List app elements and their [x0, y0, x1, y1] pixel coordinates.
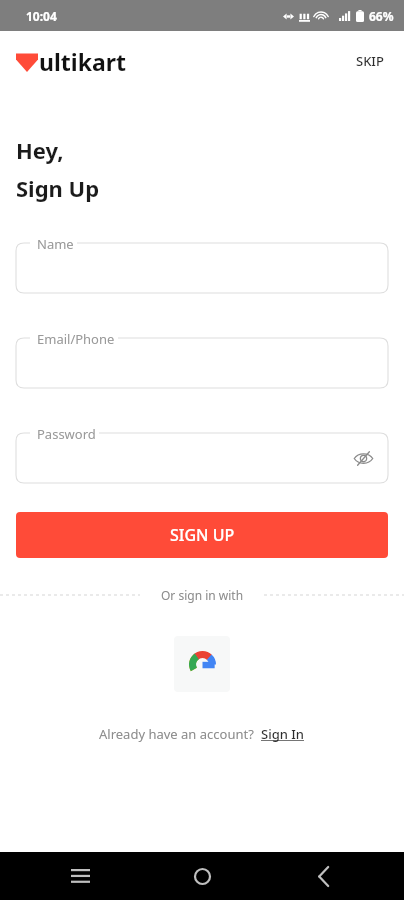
staticText: 10:04: [26, 8, 57, 24]
button[interactable]: Sign in with Google: [174, 636, 230, 692]
staticText: Hey,: [16, 135, 64, 165]
staticText: Name: [37, 235, 74, 253]
staticText: SIGN UP: [170, 524, 235, 546]
button[interactable]: SKIP: [352, 46, 388, 76]
button[interactable]: Recent apps: [60, 856, 100, 896]
staticText: Sign Up: [16, 173, 100, 203]
staticText: Email/Phone: [37, 330, 115, 348]
button[interactable]: Sign In: [261, 722, 305, 746]
staticText: Password: [37, 425, 96, 443]
staticText: 66%: [369, 8, 394, 24]
staticText: SKIP: [356, 52, 384, 70]
button[interactable]: Home: [182, 856, 222, 896]
staticText: Sign In: [261, 725, 305, 743]
staticText: Or sign in with: [161, 587, 244, 603]
staticText: Already have an account?: [99, 725, 254, 743]
staticText: ultikart: [39, 46, 126, 77]
button[interactable]: SIGN UP: [16, 512, 388, 558]
button[interactable]: Back: [304, 856, 344, 896]
button[interactable]: Toggle password visibility: [350, 445, 376, 471]
